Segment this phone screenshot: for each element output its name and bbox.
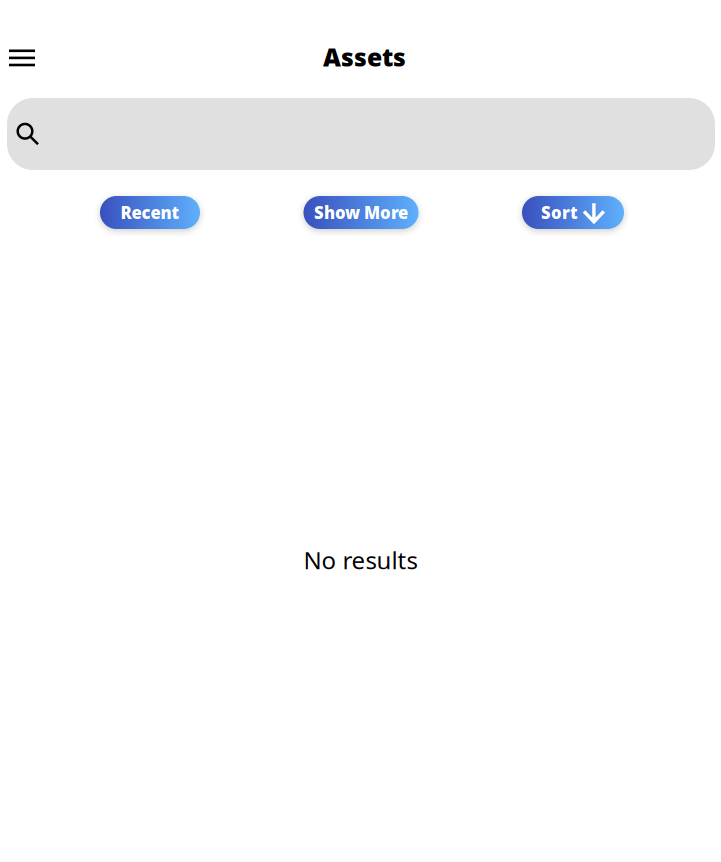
staticText: Sort [541,201,578,224]
staticText: Assets [323,40,406,74]
button[interactable]: Recent [100,196,200,229]
staticText: Recent [120,201,179,224]
staticText: Show More [314,201,408,224]
button[interactable]: Sort [522,196,624,229]
button[interactable]: Show More [303,196,418,229]
button[interactable]: Search [0,98,721,170]
button[interactable]: Menu [0,26,49,71]
staticText: No results [303,544,417,576]
